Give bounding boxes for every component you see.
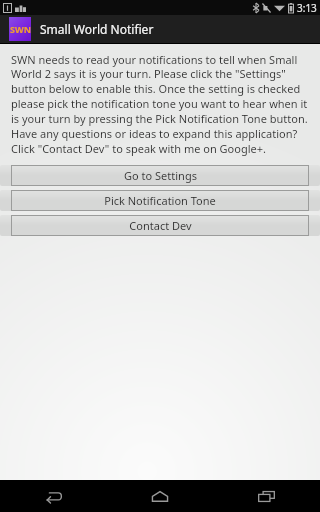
staticText: 3:13 (297, 1, 317, 15)
button[interactable]: Back (0, 480, 106, 512)
button[interactable]: Go to Settings (0, 165, 320, 186)
staticText: Pick Notification Tone (104, 193, 216, 208)
staticText: Small World Notifier (40, 21, 154, 37)
button[interactable]: Home (106, 480, 213, 512)
button[interactable]: Pick Notification Tone (0, 190, 320, 211)
button[interactable]: Contact Dev (0, 215, 320, 236)
staticText: SWN needs to read your notifications to … (11, 52, 309, 157)
staticText: Go to Settings (124, 168, 197, 183)
staticText: Contact Dev (129, 218, 192, 233)
button[interactable]: Recent apps (213, 480, 320, 512)
staticText: SWN (10, 23, 31, 35)
